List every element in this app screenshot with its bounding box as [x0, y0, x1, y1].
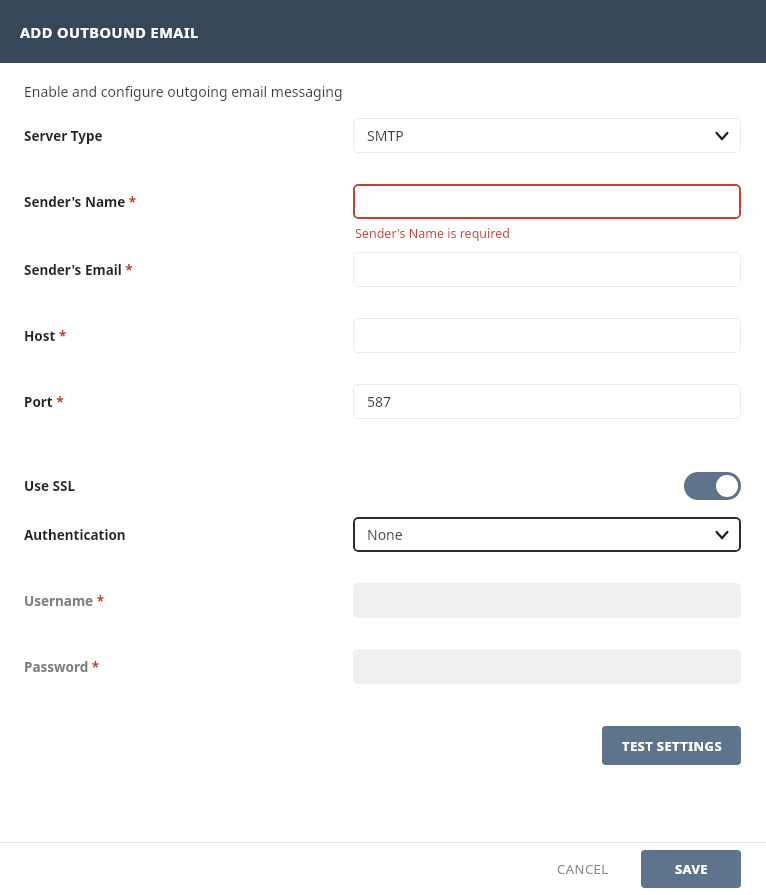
staticText: Username * — [24, 592, 104, 610]
button[interactable]: SAVE — [641, 850, 741, 888]
button[interactable]: SMTP — [353, 118, 741, 153]
staticText: 587 — [367, 392, 392, 411]
staticText: ADD OUTBOUND EMAIL — [20, 22, 199, 42]
staticText: Use SSL — [24, 477, 75, 495]
button[interactable]: TEST SETTINGS — [602, 726, 741, 765]
staticText: CANCEL — [557, 860, 609, 878]
button[interactable]: CANCEL — [543, 852, 623, 886]
button[interactable]: Use SSL toggle — [684, 472, 741, 500]
staticText: Server Type — [24, 127, 103, 145]
staticText: Port * — [24, 393, 64, 411]
staticText: TEST SETTINGS — [622, 737, 722, 755]
staticText: SAVE — [675, 860, 708, 878]
staticText: None — [367, 525, 713, 544]
staticText: Password * — [24, 658, 100, 676]
staticText: Sender's Email * — [24, 261, 133, 279]
button[interactable]: None — [353, 517, 741, 552]
staticText: Authentication — [24, 526, 126, 544]
staticText: Sender's Name is required — [355, 225, 510, 242]
staticText: SMTP — [367, 126, 713, 145]
staticText: Host * — [24, 327, 67, 345]
staticText: Sender's Name * — [24, 193, 137, 211]
staticText: Enable and configure outgoing email mess… — [24, 82, 343, 101]
